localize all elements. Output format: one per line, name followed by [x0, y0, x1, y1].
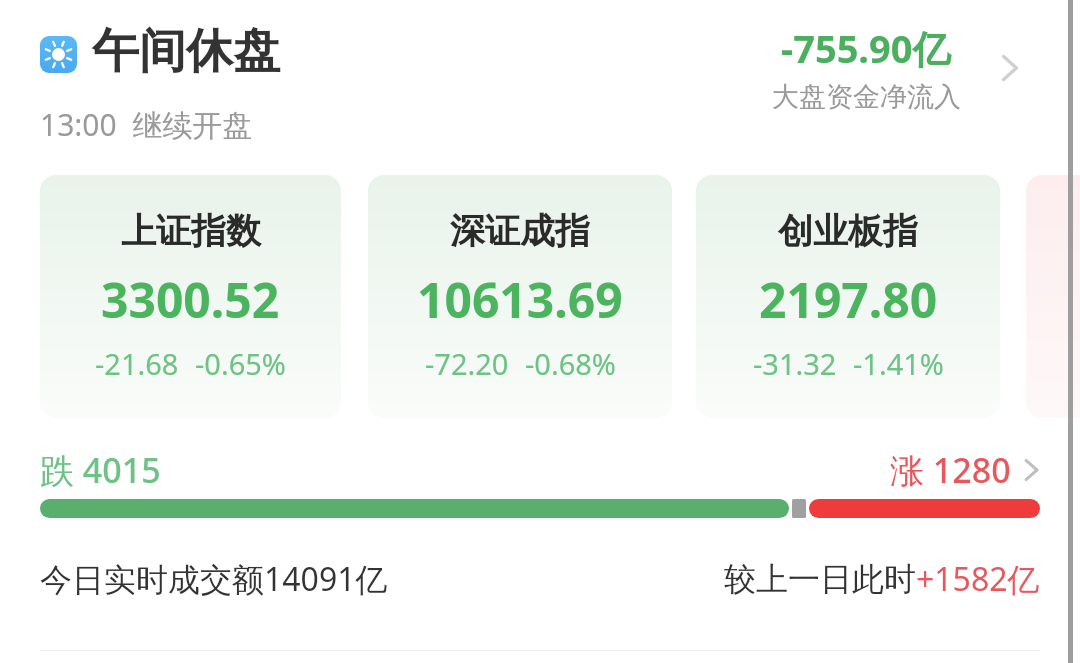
staticText: -0.65% [195, 344, 286, 383]
button[interactable]: 上证指数 [40, 175, 341, 418]
staticText: 午间休盘 [92, 22, 280, 81]
staticText: -0.68% [525, 344, 616, 383]
staticText: -72.20 [425, 344, 509, 383]
button[interactable]: 创业板指 [696, 175, 1000, 418]
staticText: 2197.80 [759, 267, 938, 332]
staticText: 较上一日此时 [724, 559, 916, 599]
staticText: 10613.69 [417, 267, 623, 332]
staticText: 涨 1280 [890, 447, 1011, 493]
staticText: 深证成指 [450, 209, 590, 253]
staticText: 3300.52 [101, 267, 280, 332]
staticText: 上证指数 [121, 209, 261, 253]
staticText: 今日实时成交额14091亿 [40, 557, 388, 601]
staticText: 跌 4015 [40, 447, 161, 493]
staticText: 13:00 继续开盘 [40, 104, 253, 145]
staticText: 创业板指 [778, 209, 918, 253]
button[interactable]: 深证成指 [368, 175, 672, 418]
staticText: +1582亿 [916, 557, 1040, 601]
staticText: -21.68 [95, 344, 179, 383]
button[interactable]: 跌 4015 [40, 446, 1040, 494]
staticText: -31.32 [753, 344, 837, 383]
button[interactable] [40, 499, 1040, 518]
staticText: -755.90亿 [781, 22, 951, 74]
button[interactable] [1026, 175, 1080, 418]
staticText: 大盘资金净流入 [772, 80, 961, 114]
staticText: -1.41% [853, 344, 944, 383]
button[interactable]: -755.90亿 [740, 18, 1040, 118]
other: Midday market status [40, 36, 77, 73]
